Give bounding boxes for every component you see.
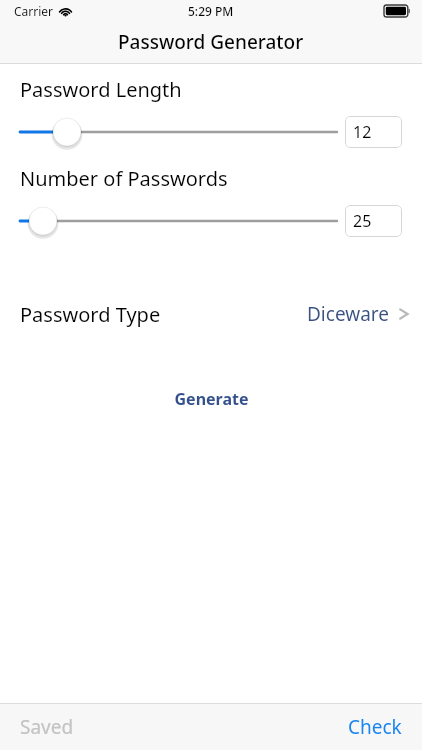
button[interactable]: Password Type: [0, 296, 422, 332]
staticText: Password Length: [20, 76, 182, 102]
button[interactable]: Slider: [0, 116, 422, 148]
staticText: Saved: [20, 714, 74, 740]
staticText: Carrier: [14, 3, 54, 19]
button[interactable]: Generate: [0, 384, 422, 414]
staticText: Password Generator: [118, 29, 304, 55]
staticText: Generate: [174, 388, 249, 410]
button[interactable]: Saved: [0, 704, 90, 750]
staticText: 25: [353, 210, 372, 232]
staticText: Diceware: [307, 301, 390, 327]
button[interactable]: 12: [345, 116, 402, 148]
staticText: 5:29 PM: [188, 3, 234, 19]
button[interactable]: Check: [332, 704, 422, 750]
staticText: Password Type: [20, 301, 161, 328]
button[interactable]: Slider: [0, 205, 422, 237]
button[interactable]: 25: [345, 205, 402, 237]
staticText: 12: [353, 121, 372, 143]
staticText: Number of Passwords: [20, 165, 228, 191]
staticText: Check: [348, 714, 402, 740]
